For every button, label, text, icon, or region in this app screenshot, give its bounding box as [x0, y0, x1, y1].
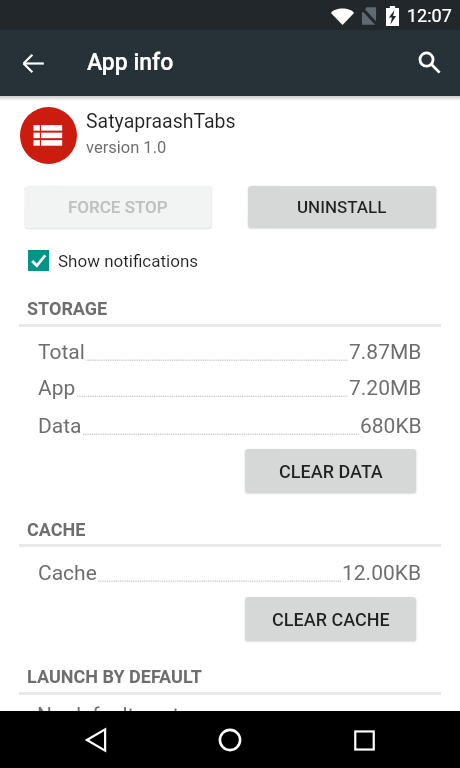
staticText: CLEAR DATA [279, 461, 383, 482]
staticText: Cache [38, 561, 97, 586]
staticText: Total [38, 340, 85, 365]
staticText: Show notifications [58, 251, 199, 271]
staticText: SatyapraashTabs [86, 110, 236, 133]
button[interactable]: CLEAR DATA [245, 449, 416, 493]
button[interactable]: Home [207, 717, 253, 763]
button[interactable]: Back [73, 717, 119, 763]
button[interactable]: CLEAR CACHE [245, 597, 416, 641]
staticText: App [38, 376, 76, 401]
staticText: 12:07 [407, 5, 452, 26]
staticText: Data [38, 414, 82, 439]
button[interactable]: Search [409, 42, 449, 82]
staticText: No defaults set [37, 703, 180, 728]
staticText: UNINSTALL [297, 197, 387, 217]
staticText: FORCE STOP [68, 197, 168, 217]
button[interactable]: Show notifications [28, 250, 199, 271]
button[interactable]: Total [0, 340, 460, 374]
staticText: version 1.0 [86, 138, 167, 157]
button[interactable]: UNINSTALL [248, 186, 436, 228]
button[interactable]: Cache [0, 561, 460, 595]
staticText: CACHE [27, 519, 86, 540]
button[interactable]: Data [0, 414, 460, 448]
staticText: 680KB [360, 414, 422, 439]
staticText: CLEAR CACHE [272, 609, 390, 630]
staticText: App info [87, 49, 174, 76]
button[interactable]: FORCE STOP [25, 186, 211, 228]
button[interactable]: Recent apps [341, 717, 387, 763]
staticText: LAUNCH BY DEFAULT [27, 666, 202, 687]
button[interactable]: App [0, 376, 460, 410]
staticText: 7.20MB [349, 376, 422, 401]
staticText: 7.87MB [349, 340, 422, 365]
button[interactable]: Navigate up [13, 43, 53, 83]
staticText: 12.00KB [342, 561, 422, 586]
staticText: STORAGE [27, 298, 108, 319]
